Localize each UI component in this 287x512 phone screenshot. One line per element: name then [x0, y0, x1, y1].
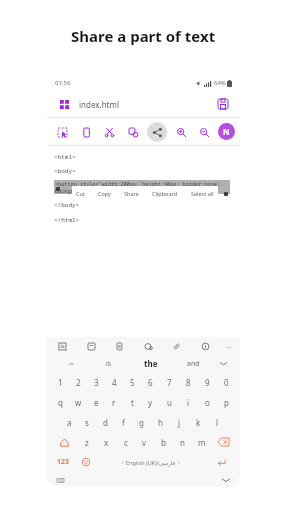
- button[interactable]: s: [78, 412, 96, 432]
- staticText: p: [224, 397, 229, 408]
- staticText: English (UK)/فارسی: [126, 459, 176, 466]
- staticText: y: [148, 397, 153, 408]
- button[interactable]: the: [127, 358, 175, 369]
- button[interactable]: u: [160, 392, 179, 412]
- button[interactable]: Emoji: [76, 452, 96, 472]
- button[interactable]: d: [96, 412, 114, 432]
- staticText: 0: [224, 377, 229, 388]
- button[interactable]: g: [132, 412, 151, 432]
- button[interactable]: Copy: [97, 190, 112, 197]
- staticText: the: [144, 358, 158, 369]
- button[interactable]: 4: [105, 372, 123, 392]
- button[interactable]: is: [90, 359, 127, 369]
- button[interactable]: e: [87, 392, 105, 412]
- staticText: z: [85, 437, 89, 448]
- button[interactable]: Zoom in: [171, 122, 191, 142]
- staticText: Cut: [76, 190, 85, 197]
- staticText: d: [103, 417, 108, 428]
- button[interactable]: Clipboard: [151, 190, 179, 197]
- staticText: v: [142, 437, 147, 448]
- button[interactable]: Menu: [55, 95, 73, 113]
- staticText: Select all: [191, 190, 214, 197]
- staticText: 123: [57, 457, 70, 467]
- staticText: 5: [130, 377, 135, 388]
- button[interactable]: 2: [69, 372, 87, 392]
- button[interactable]: Profile: [218, 123, 235, 140]
- button[interactable]: 1: [51, 372, 69, 392]
- button[interactable]: Select: [52, 122, 72, 142]
- button[interactable]: p: [217, 392, 236, 412]
- staticText: j: [178, 417, 181, 428]
- button[interactable]: x: [97, 432, 116, 452]
- button[interactable]: q: [51, 392, 69, 412]
- button[interactable]: Shift: [51, 432, 77, 452]
- button[interactable]: Keyboard tool 3: [141, 339, 155, 353]
- button[interactable]: 123: [51, 452, 76, 472]
- button[interactable]: Space: [96, 452, 206, 472]
- button[interactable]: 6: [141, 372, 160, 392]
- button[interactable]: Share: [123, 190, 140, 197]
- button[interactable]: Expand suggestions: [212, 360, 234, 367]
- button[interactable]: 3: [87, 372, 105, 392]
- staticText: 6: [148, 377, 153, 388]
- button[interactable]: Keyboard tool 4: [169, 339, 183, 353]
- button[interactable]: b: [154, 432, 173, 452]
- button[interactable]: Enter: [206, 452, 236, 472]
- button[interactable]: Save: [214, 95, 232, 113]
- button[interactable]: Share: [147, 122, 167, 142]
- button[interactable]: f: [114, 412, 132, 432]
- button[interactable]: 7: [160, 372, 179, 392]
- button[interactable]: Cut: [75, 190, 86, 197]
- button[interactable]: Keyboard tool 5: [198, 339, 212, 353]
- staticText: b: [161, 437, 166, 448]
- button[interactable]: j: [170, 412, 189, 432]
- staticText: N: [223, 126, 230, 137]
- button[interactable]: 8: [179, 372, 198, 392]
- button[interactable]: l: [208, 412, 227, 432]
- staticText: 7: [167, 377, 172, 388]
- staticText: i: [187, 397, 190, 408]
- button[interactable]: and: [175, 359, 212, 369]
- button[interactable]: c: [116, 432, 135, 452]
- button[interactable]: Cut: [99, 122, 119, 142]
- staticText: Clipboard: [152, 190, 178, 197]
- button[interactable]: w: [69, 392, 87, 412]
- button[interactable]: Copy: [76, 122, 96, 142]
- button[interactable]: ✂: [53, 360, 90, 367]
- button[interactable]: y: [141, 392, 160, 412]
- button[interactable]: o: [198, 392, 217, 412]
- button[interactable]: Backspace: [211, 432, 236, 452]
- button[interactable]: h: [151, 412, 170, 432]
- button[interactable]: Zoom out: [194, 122, 214, 142]
- button[interactable]: m: [192, 432, 211, 452]
- button[interactable]: Clipboard: [123, 122, 143, 142]
- button[interactable]: Keyboard tool 1: [84, 339, 98, 353]
- button[interactable]: a: [60, 412, 78, 432]
- button[interactable]: Hide keyboard: [220, 474, 232, 486]
- button[interactable]: v: [135, 432, 154, 452]
- button[interactable]: Keyboard tool 2: [112, 339, 126, 353]
- staticText: t: [131, 397, 134, 408]
- button[interactable]: Select all: [190, 190, 215, 197]
- staticText: h: [158, 417, 163, 428]
- button[interactable]: 0: [217, 372, 236, 392]
- staticText: Copy: [98, 190, 111, 197]
- button[interactable]: Keyboard layout: [55, 475, 65, 485]
- staticText: 9: [205, 377, 210, 388]
- button[interactable]: t: [123, 392, 141, 412]
- button[interactable]: 9: [198, 372, 217, 392]
- staticText: ›: [178, 458, 180, 466]
- staticText: c: [124, 437, 128, 448]
- button[interactable]: r: [105, 392, 123, 412]
- button[interactable]: n: [173, 432, 192, 452]
- button[interactable]: 5: [123, 372, 141, 392]
- button[interactable]: Keyboard tool 0: [55, 339, 69, 353]
- staticText: l: [216, 417, 219, 428]
- staticText: r: [112, 397, 116, 408]
- staticText: 1: [58, 377, 63, 388]
- staticText: index.html: [79, 99, 120, 110]
- button[interactable]: i: [179, 392, 198, 412]
- button[interactable]: z: [77, 432, 97, 452]
- staticText: ‹: [122, 458, 124, 466]
- button[interactable]: k: [189, 412, 208, 432]
